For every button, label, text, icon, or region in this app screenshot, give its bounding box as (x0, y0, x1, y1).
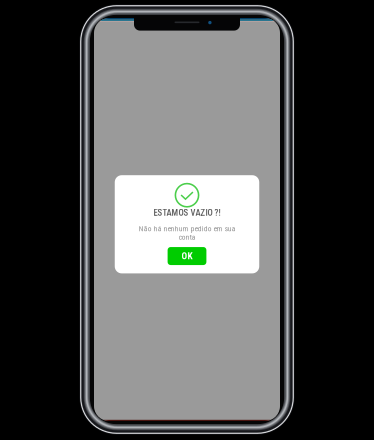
staticText: Não há nenhum pedido em sua conta (138, 224, 235, 242)
button[interactable]: OK (168, 247, 206, 265)
staticText: ESTAMOS VAZIO ?! (153, 208, 220, 218)
staticText: OK (181, 251, 192, 261)
